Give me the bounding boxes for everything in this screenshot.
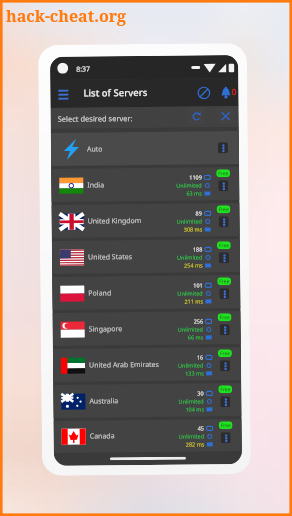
staticText: Unlimited (177, 289, 203, 297)
staticText: 89 (195, 209, 203, 217)
button[interactable]: Australia (53, 383, 241, 418)
button[interactable]: More options (220, 324, 230, 335)
staticText: Free (221, 422, 232, 429)
staticText: Canada (90, 431, 115, 441)
staticText: Free (218, 206, 230, 213)
staticText: 282 ms (186, 440, 205, 448)
button[interactable]: More options (221, 432, 231, 443)
button[interactable]: Free (219, 421, 233, 429)
staticText: Australia (89, 396, 118, 407)
staticText: 308 ms (184, 225, 203, 233)
staticText: List of Servers (83, 86, 147, 100)
staticText: 63 ms (186, 189, 202, 197)
staticText: Poland (88, 288, 111, 298)
staticText: United States (88, 252, 132, 262)
button[interactable]: Auto (51, 131, 239, 166)
staticText: 104 ms (185, 405, 204, 413)
staticText: 133 ms (185, 369, 204, 377)
staticText: Singapore (89, 324, 123, 334)
button[interactable]: More options (219, 216, 229, 227)
button[interactable]: Refresh (188, 107, 205, 125)
staticText: Auto (87, 144, 103, 155)
staticText: 30 (197, 389, 204, 396)
staticText: India (87, 180, 104, 191)
button[interactable]: More options (219, 288, 229, 299)
button[interactable]: United States (52, 239, 240, 274)
button[interactable]: Canada (54, 419, 242, 453)
staticText: United Kingdom (88, 216, 142, 226)
staticText: Unlimited (176, 181, 202, 189)
staticText: Free (219, 278, 230, 285)
staticText: 101 (193, 281, 203, 289)
staticText: Unlimited (178, 361, 204, 369)
staticText: Free (220, 350, 231, 357)
button[interactable]: Free (217, 241, 231, 249)
button[interactable]: India (51, 167, 239, 202)
button[interactable]: Free (217, 313, 232, 321)
staticText: Free (220, 386, 231, 393)
staticText: Unlimited (177, 253, 203, 261)
staticText: Free (219, 242, 230, 249)
staticText: hack-cheat.org (6, 5, 127, 27)
staticText: 66 ms (188, 333, 204, 341)
staticText: Select desired server: (58, 113, 133, 124)
staticText: Free (219, 314, 231, 321)
button[interactable]: More options (220, 360, 230, 371)
button[interactable]: Menu (53, 80, 74, 108)
button[interactable]: Free (216, 169, 230, 177)
button[interactable]: More options (218, 142, 228, 153)
button[interactable]: Free (218, 349, 232, 357)
button[interactable]: United Kingdom (51, 203, 240, 238)
staticText: 256 (194, 317, 204, 325)
button[interactable]: Free (216, 205, 231, 213)
staticText: 1109 (189, 173, 202, 181)
button[interactable]: Connection status (192, 78, 215, 106)
staticText: Free (218, 170, 229, 177)
staticText: Unlimited (177, 217, 203, 225)
staticText: 45 (198, 424, 205, 431)
staticText: 8:37 (76, 64, 90, 75)
staticText: 16 (197, 353, 204, 360)
staticText: Unlimited (178, 325, 204, 333)
staticText: Unlimited (179, 432, 205, 440)
button[interactable]: Notifications (217, 78, 235, 106)
button[interactable]: United Arab Emirates (53, 347, 241, 382)
button[interactable]: Clear (217, 107, 234, 124)
button[interactable]: More options (219, 252, 229, 263)
staticText: 188 (193, 245, 203, 253)
staticText: Unlimited (178, 397, 204, 405)
button[interactable]: More options (220, 396, 230, 407)
button[interactable]: Singapore (52, 311, 241, 346)
button[interactable]: Poland (52, 275, 240, 310)
button[interactable]: More options (218, 180, 228, 191)
staticText: 0 (231, 85, 237, 97)
button[interactable]: Free (217, 277, 231, 285)
staticText: United Arab Emirates (89, 360, 159, 371)
staticText: 211 ms (184, 297, 203, 305)
staticText: 254 ms (184, 261, 203, 269)
button[interactable]: Free (218, 385, 232, 393)
